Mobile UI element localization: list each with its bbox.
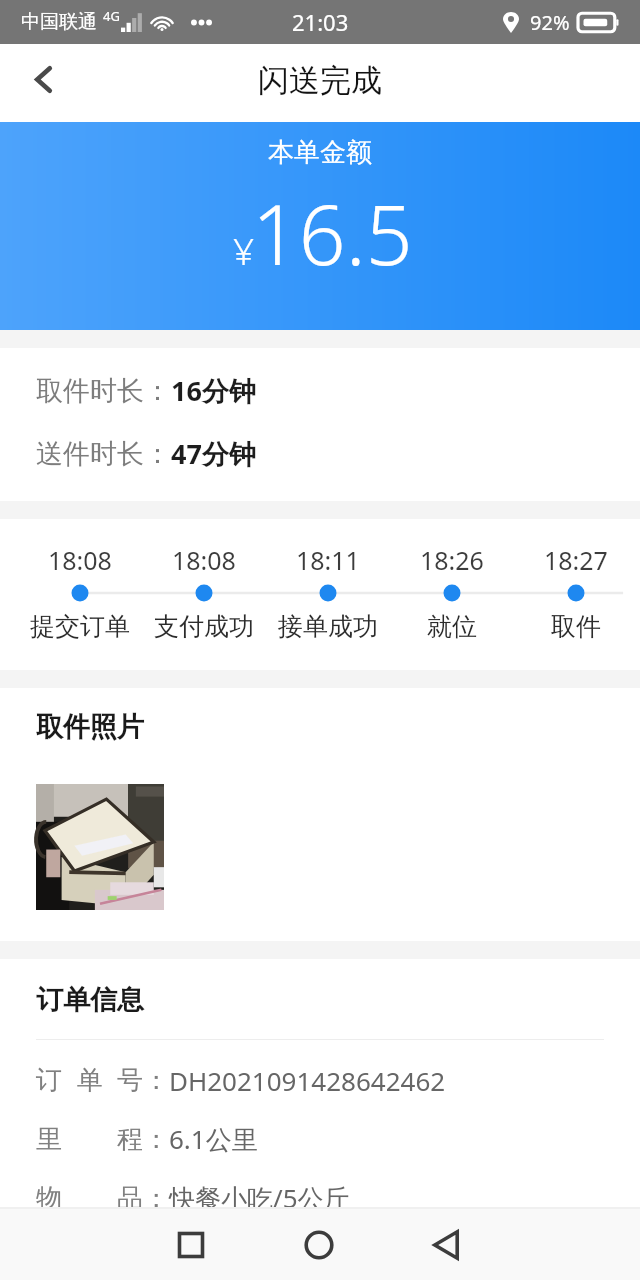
staticText: 品	[117, 1182, 143, 1215]
staticText: 16分钟	[171, 372, 256, 409]
staticText: 号	[117, 1064, 143, 1097]
staticText: 47分钟	[171, 435, 256, 472]
staticText: 就位	[427, 611, 477, 642]
staticText: 16.5	[252, 177, 413, 289]
staticText: 18:11	[296, 543, 360, 577]
staticText: 取件照片	[36, 710, 144, 744]
button[interactable]: Recent apps	[163, 1217, 219, 1273]
staticText: 4G	[103, 7, 120, 25]
staticText: 提交订单	[30, 611, 130, 642]
staticText: 本单金额	[268, 136, 372, 169]
staticText: 程	[117, 1123, 143, 1156]
staticText: 92%	[530, 9, 570, 36]
staticText: 18:27	[544, 543, 608, 577]
staticText: 6.1公里	[169, 1121, 258, 1157]
button[interactable]: Home	[291, 1217, 347, 1273]
staticText: 18:26	[420, 543, 484, 577]
staticText: 闪送完成	[258, 61, 382, 100]
staticText: 送件时长：	[36, 437, 171, 471]
staticText: 取件时长：	[36, 374, 171, 408]
staticText: 物	[36, 1182, 62, 1215]
button[interactable]: Back	[418, 1217, 474, 1273]
staticText: 支付成功	[154, 611, 254, 642]
staticText: ：	[143, 1182, 169, 1215]
staticText: 里	[36, 1123, 62, 1156]
button[interactable]: Back	[15, 51, 71, 107]
staticText: 接单成功	[278, 611, 378, 642]
button[interactable]: Pickup photo	[36, 784, 164, 910]
staticText: 取件	[551, 611, 601, 642]
staticText: 18:08	[172, 543, 236, 577]
staticText: 快餐小吃/5公斤	[169, 1180, 350, 1216]
staticText: 18:08	[48, 543, 112, 577]
staticText: ：	[143, 1064, 169, 1097]
staticText: ：	[143, 1123, 169, 1156]
staticText: 单	[77, 1064, 103, 1097]
staticText: 中国联通	[21, 10, 97, 34]
staticText: 21:03	[292, 7, 349, 37]
staticText: 订单信息	[36, 983, 144, 1017]
staticText: DH2021091428642462	[169, 1063, 446, 1098]
staticText: 订	[36, 1064, 62, 1097]
staticText: ¥	[233, 225, 255, 275]
